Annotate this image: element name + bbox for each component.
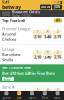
button[interactable]: 2 (53, 88, 62, 96)
button[interactable]: X (43, 50, 52, 58)
staticText: LOG IN (41, 5, 50, 9)
staticText: 9:41 (2, 0, 9, 5)
staticText: 2 (56, 29, 58, 34)
staticText: 3.40 (44, 92, 51, 98)
button[interactable]: Premier League (0, 24, 64, 44)
staticText: 2.75 (54, 92, 61, 98)
staticText: X (46, 49, 48, 54)
staticText: 2 (56, 49, 58, 54)
staticText: 2.10 (34, 34, 41, 39)
staticText: 3.40 (44, 54, 51, 60)
button[interactable]: JOIN (52, 4, 62, 9)
staticText: 2.75 (54, 54, 61, 60)
staticText: NEW CUSTOMER OFFER (2, 66, 31, 69)
staticText: 1 (36, 49, 38, 54)
button[interactable]: 1 (33, 88, 42, 96)
staticText: 2.10 (34, 92, 41, 98)
button[interactable]: Serie A (0, 82, 64, 100)
staticText: 1 (36, 87, 38, 92)
button[interactable]: Sports (0, 91, 13, 100)
staticText: 1 (36, 29, 38, 34)
staticText: More (54, 96, 61, 100)
staticText: 3.40 (44, 34, 51, 39)
button[interactable]: X (43, 88, 52, 96)
staticText: JOIN (54, 5, 60, 9)
staticText: Top Football (2, 18, 25, 23)
staticText: La Liga (2, 46, 14, 52)
staticText: Premier League (2, 26, 30, 31)
staticText: betway (2, 3, 21, 11)
staticText: Today · 20:00 (12, 14, 31, 18)
staticText: Casino (27, 96, 36, 100)
staticText: Arsenal (2, 31, 16, 37)
staticText: Sevilla (2, 57, 13, 62)
button[interactable]: CLAIM NOW (2, 77, 14, 81)
button[interactable]: All (54, 18, 62, 22)
button[interactable]: LOG IN (40, 4, 51, 9)
staticText: Barcelona (2, 52, 20, 57)
staticText: Boosted Odds (12, 9, 40, 14)
staticText: Milan (2, 95, 12, 100)
staticText: 2.10 (34, 54, 41, 60)
staticText: Juventus (2, 90, 16, 95)
staticText: 2 (56, 87, 58, 92)
staticText: X (46, 87, 48, 92)
button[interactable]: Live (13, 91, 26, 100)
staticText: Live (17, 96, 22, 100)
staticText: CLAIM NOW (3, 75, 12, 82)
staticText: Bet £10 Get £30 in Free Bets (2, 70, 55, 76)
button[interactable]: More (51, 91, 64, 100)
button[interactable]: 2 (53, 50, 62, 58)
button[interactable]: 1 (33, 50, 42, 58)
staticText: Sports (2, 96, 10, 100)
staticText: Bets (42, 96, 48, 100)
staticText: Serie A (2, 84, 15, 90)
button[interactable]: Bets (38, 91, 51, 100)
button[interactable]: X (43, 30, 52, 38)
button[interactable]: 2 (53, 30, 62, 38)
button[interactable]: Casino (26, 91, 38, 100)
staticText: • ıl ▮ (54, 0, 62, 5)
staticText: Chelsea (2, 37, 16, 42)
staticText: 2.75 (54, 34, 61, 39)
staticText: X (46, 29, 48, 34)
button[interactable]: 1 (33, 30, 42, 38)
staticText: All (56, 19, 60, 22)
button[interactable]: La Liga (0, 44, 64, 64)
